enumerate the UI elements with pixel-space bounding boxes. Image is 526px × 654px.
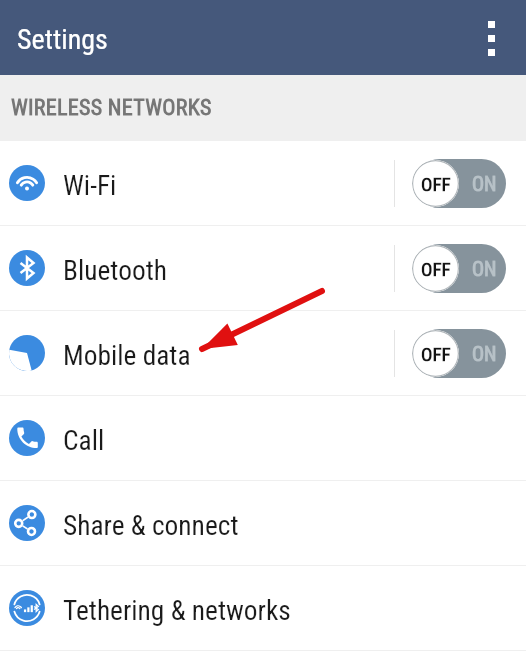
button[interactable]: Share & connect xyxy=(0,481,526,565)
staticText: OFF xyxy=(421,173,451,195)
staticText: ON xyxy=(472,342,497,365)
staticText: OFF xyxy=(421,258,451,280)
staticText: Mobile data xyxy=(63,340,191,372)
staticText: Tethering & networks xyxy=(63,595,291,627)
staticText: Bluetooth xyxy=(63,255,167,287)
staticText: Wi-Fi xyxy=(63,170,117,202)
button[interactable]: Mobile toggle, off xyxy=(415,159,506,208)
staticText: WIRELESS NETWORKS xyxy=(11,95,212,121)
staticText: ON xyxy=(472,257,497,280)
staticText: Settings xyxy=(17,23,108,56)
button[interactable]: Mobile toggle, off xyxy=(415,244,506,293)
button[interactable]: Tethering & networks xyxy=(0,566,526,650)
button[interactable]: Bluetooth xyxy=(0,226,526,310)
staticText: Share & connect xyxy=(63,510,239,542)
staticText: Call xyxy=(63,425,105,457)
button[interactable]: Call xyxy=(0,396,526,480)
staticText: OFF xyxy=(421,343,451,365)
staticText: ON xyxy=(472,172,497,195)
button[interactable]: Mobile data xyxy=(0,311,526,395)
button[interactable]: Wi-Fi xyxy=(0,141,526,225)
button[interactable]: More options xyxy=(471,18,511,58)
button[interactable]: Mobile toggle, off xyxy=(415,329,506,378)
